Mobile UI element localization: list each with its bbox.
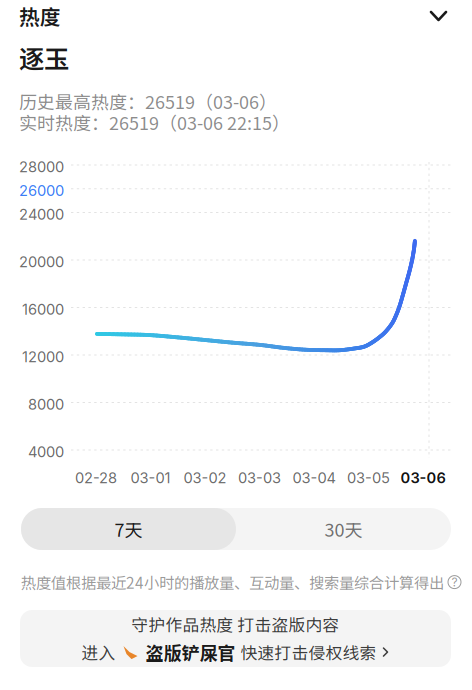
staticText: ? [451,575,457,589]
staticText: 12000 [22,348,64,366]
staticText: 守护作品热度 打击盗版内容 [131,612,339,636]
staticText: 03-04 [292,469,335,487]
staticText: 热度 [19,1,61,31]
button[interactable]: 守护作品热度 打击盗版内容 [20,610,451,667]
staticText: 20000 [19,253,64,271]
staticText: 16000 [22,300,64,318]
staticText: 盗版铲屎官 [145,639,235,665]
staticText: 7天 [114,516,142,542]
staticText: 03-06 [400,469,445,487]
button[interactable]: 30天 [236,508,451,550]
staticText: 实时热度：26519（03-06 22:15） [19,109,290,135]
staticText: 03-02 [183,469,226,487]
staticText: 进入 [81,640,115,664]
staticText: 26000 [19,182,64,199]
staticText: 30天 [324,516,362,542]
staticText: 02-28 [75,469,117,487]
button[interactable]: Collapse [0,0,472,690]
button[interactable]: 7天 [21,508,236,550]
staticText: 历史最高热度：26519（03-06） [19,88,277,114]
staticText: 热度值根据最近24小时的播放量、互动量、搜索量综合计算得出 [21,571,444,593]
staticText: 4000 [28,443,64,461]
staticText: 03-05 [347,469,390,487]
staticText: 快速打击侵权线索 [240,640,376,664]
staticText: 8000 [28,395,64,413]
staticText: 28000 [19,158,64,176]
staticText: 03-01 [130,469,170,487]
staticText: 24000 [19,205,64,223]
staticText: 逐玉 [19,39,69,76]
staticText: 03-03 [238,469,281,487]
